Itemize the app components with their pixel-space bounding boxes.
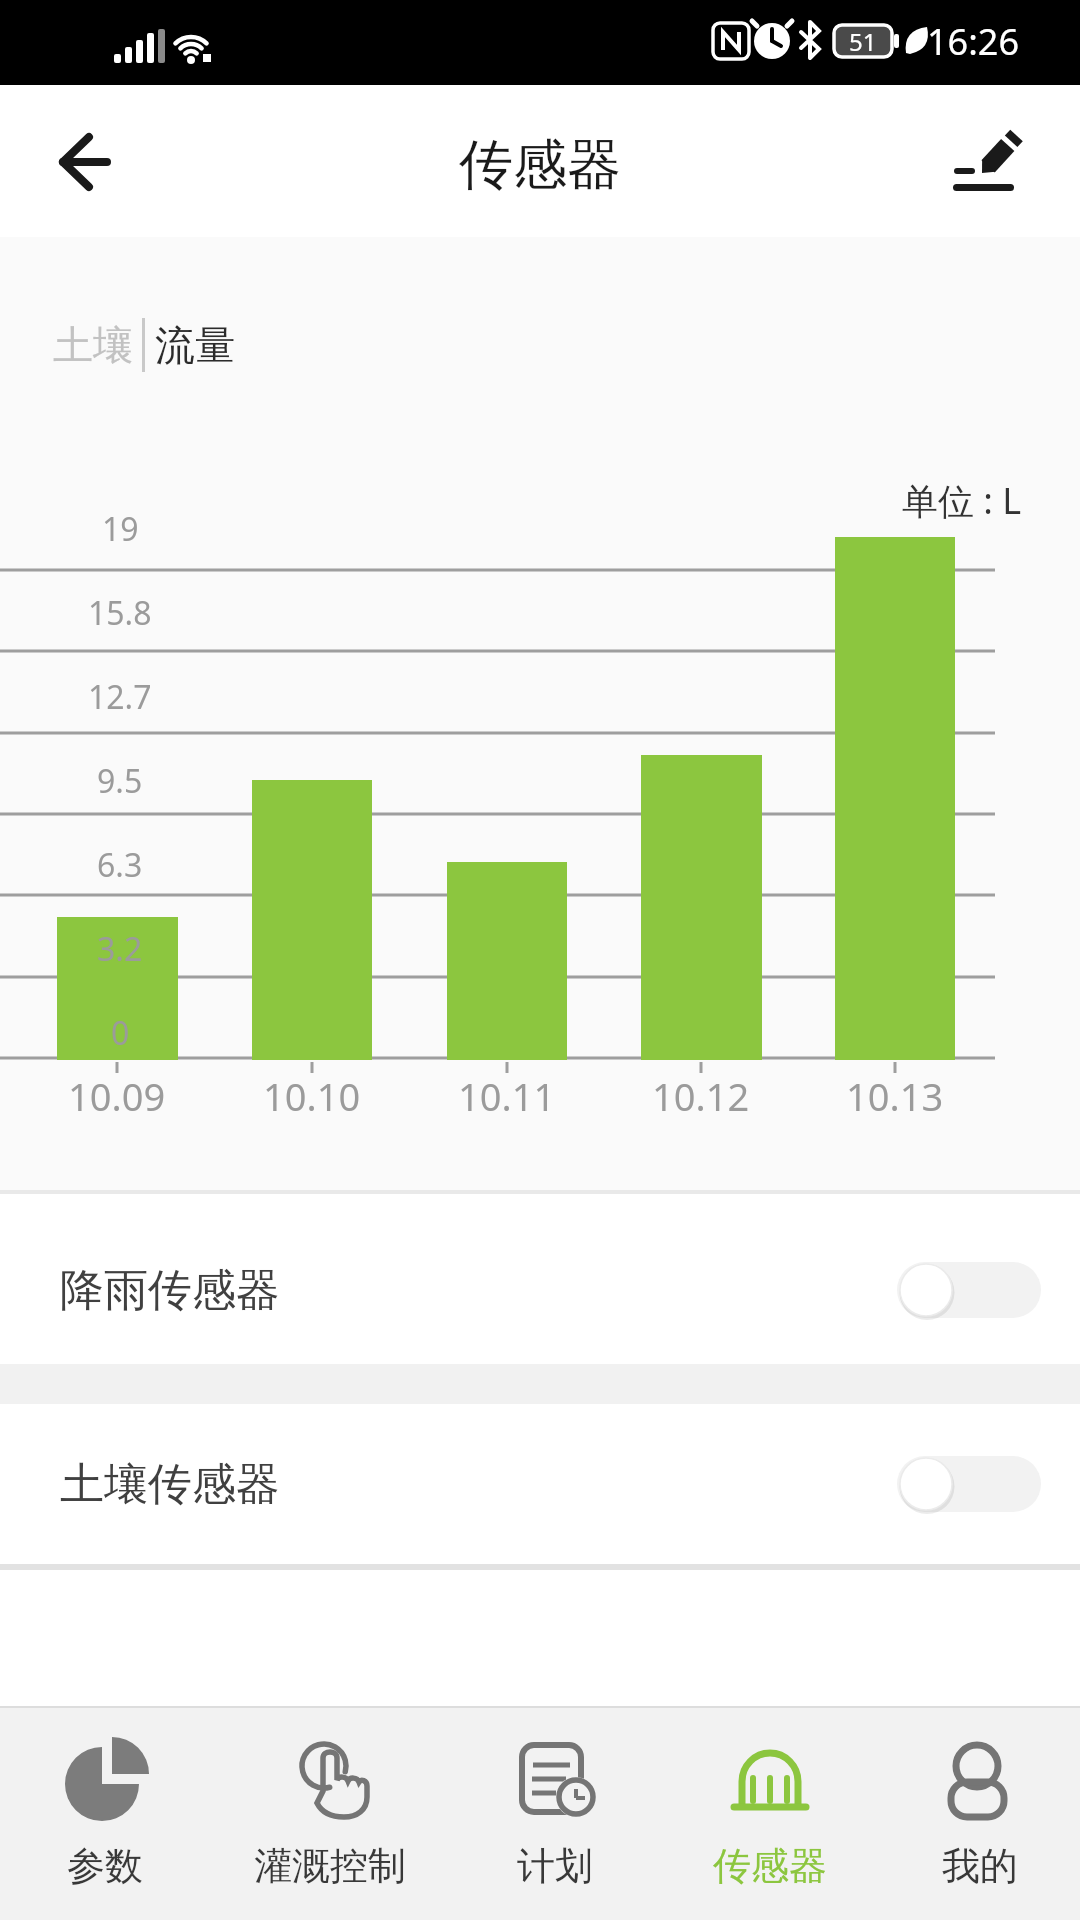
staticText: 我的 [942,1842,1018,1890]
staticText: 土壤 [53,320,133,370]
staticText: 计划 [517,1842,593,1890]
staticText: 单位 : L [902,476,1022,525]
staticText: 10.13 [846,1070,944,1122]
button[interactable] [864,1706,1080,1920]
button[interactable] [880,1444,1060,1524]
staticText: 0 [111,1011,130,1055]
staticText: 传感器 [713,1842,827,1890]
staticText: 16:26 [927,17,1020,66]
staticText: 19 [102,507,139,551]
staticText: 3.2 [97,927,143,971]
staticText: 降雨传感器 [60,1263,280,1318]
staticText: 流量 [155,320,235,370]
button[interactable] [0,1194,1080,1364]
staticText: 参数 [67,1842,143,1890]
staticText: 6.3 [97,843,143,887]
staticText: 10.09 [68,1070,166,1122]
button[interactable] [0,1404,1080,1564]
staticText: 9.5 [97,759,143,803]
staticText: 15.8 [88,591,152,635]
staticText: 10.12 [652,1070,750,1122]
button[interactable] [0,1706,216,1920]
button[interactable] [50,310,140,380]
button[interactable] [930,110,1040,220]
button[interactable] [648,1706,864,1920]
button[interactable] [216,1706,432,1920]
staticText: 10.11 [458,1070,556,1122]
staticText: 土壤传感器 [60,1457,280,1512]
button[interactable] [30,110,140,220]
button[interactable] [150,310,245,380]
staticText: 传感器 [459,131,621,199]
staticText: 灌溉控制 [254,1842,406,1890]
staticText: 12.7 [88,675,152,719]
staticText: 51 [849,25,877,58]
staticText: 10.10 [263,1070,361,1122]
button[interactable] [432,1706,648,1920]
button[interactable] [880,1250,1060,1330]
